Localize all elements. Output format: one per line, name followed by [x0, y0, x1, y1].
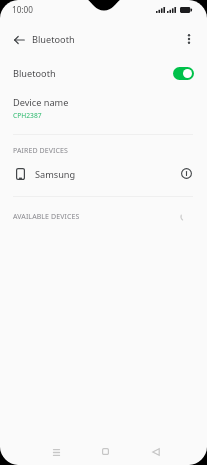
staticText: AVAILABLE DEVICES [13, 212, 80, 222]
button[interactable]: Samsung [0, 158, 207, 190]
staticText: Bluetooth [13, 67, 56, 80]
button[interactable]: Device name [0, 93, 207, 126]
button[interactable]: More options [177, 27, 201, 51]
button[interactable]: Home [93, 439, 118, 464]
button[interactable]: Recent apps [44, 440, 69, 465]
button[interactable]: Bluetooth [0, 60, 207, 86]
button[interactable]: Navigate up [7, 28, 31, 52]
staticText: PAIRED DEVICES [13, 146, 69, 156]
staticText: Device name [13, 96, 69, 109]
staticText: Bluetooth [32, 33, 75, 46]
staticText: CPH2387 [13, 111, 42, 120]
staticText: 10:00 [12, 4, 33, 15]
button[interactable]: Back [143, 439, 168, 464]
staticText: Samsung [35, 168, 76, 181]
button[interactable]: Device settings [177, 164, 196, 183]
